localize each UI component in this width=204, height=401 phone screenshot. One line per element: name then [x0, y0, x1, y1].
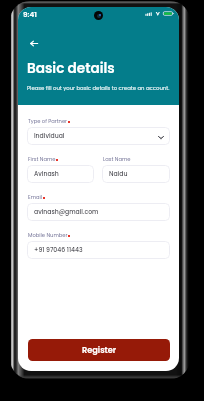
- button[interactable]: Back: [26, 36, 42, 50]
- button[interactable]: +91 97046 11443: [27, 241, 170, 259]
- button[interactable]: Register: [28, 339, 170, 361]
- staticText: Please fill out your basic details to cr…: [27, 84, 170, 91]
- staticText: First Name: [28, 156, 56, 163]
- staticText: Basic details: [27, 59, 115, 78]
- staticText: Type of Partner: [28, 118, 68, 125]
- staticText: Individual: [34, 132, 65, 141]
- staticText: Mobile Number: [28, 232, 68, 239]
- button[interactable]: avinash@gmail.com: [27, 203, 170, 221]
- staticText: Register: [82, 344, 117, 355]
- staticText: avinash@gmail.com: [34, 208, 99, 217]
- staticText: 9:41: [23, 9, 37, 19]
- button[interactable]: Naidu: [102, 165, 170, 183]
- staticText: Naidu: [109, 170, 128, 179]
- staticText: Avinash: [34, 170, 59, 179]
- staticText: +91 97046 11443: [34, 246, 83, 255]
- button[interactable]: Individual: [27, 127, 170, 145]
- staticText: Email: [28, 194, 43, 201]
- staticText: Last Name: [103, 156, 131, 163]
- button[interactable]: Avinash: [27, 165, 94, 183]
